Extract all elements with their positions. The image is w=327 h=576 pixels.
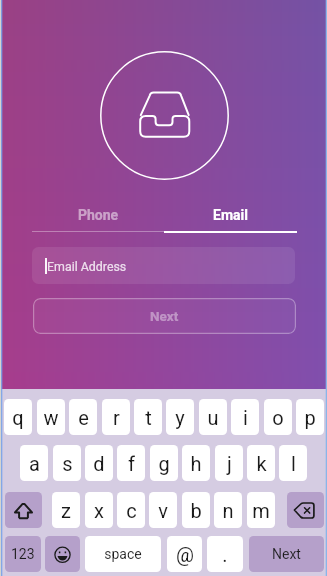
staticText: Next bbox=[150, 308, 179, 324]
button[interactable]: space bbox=[85, 536, 161, 572]
staticText: j bbox=[227, 452, 232, 475]
staticText: d bbox=[93, 452, 105, 475]
button[interactable]: Email bbox=[164, 207, 297, 233]
staticText: p bbox=[304, 406, 316, 429]
button[interactable]: r bbox=[102, 399, 130, 435]
staticText: g bbox=[158, 452, 170, 475]
button[interactable]: Next bbox=[249, 536, 324, 572]
staticText: n bbox=[222, 499, 234, 522]
button[interactable]: t bbox=[134, 399, 162, 435]
button[interactable]: w bbox=[37, 399, 65, 435]
staticText: w bbox=[43, 406, 59, 429]
staticText: Email Address bbox=[47, 259, 127, 274]
staticText: z bbox=[61, 499, 71, 522]
staticText: Phone bbox=[78, 207, 119, 223]
staticText: v bbox=[158, 499, 168, 522]
button[interactable]: g bbox=[150, 445, 178, 481]
button[interactable]: n bbox=[214, 492, 242, 528]
staticText: Email bbox=[213, 207, 248, 223]
button[interactable]: Numbers bbox=[5, 536, 41, 572]
staticText: h bbox=[190, 452, 202, 475]
staticText: q bbox=[12, 406, 24, 429]
staticText: u bbox=[207, 406, 219, 429]
staticText: space bbox=[104, 546, 142, 562]
button[interactable]: u bbox=[199, 399, 227, 435]
button[interactable]: l bbox=[279, 445, 307, 481]
staticText: x bbox=[94, 499, 104, 522]
button[interactable]: p bbox=[296, 399, 324, 435]
staticText: k bbox=[256, 452, 267, 475]
button[interactable]: s bbox=[53, 445, 81, 481]
staticText: m bbox=[252, 499, 270, 522]
staticText: i bbox=[243, 406, 248, 429]
button[interactable]: @ bbox=[167, 536, 202, 572]
staticText: 123 bbox=[11, 546, 35, 562]
staticText: b bbox=[190, 499, 202, 522]
button[interactable]: k bbox=[247, 445, 275, 481]
button[interactable]: c bbox=[117, 492, 145, 528]
staticText: a bbox=[29, 452, 40, 475]
staticText: y bbox=[175, 406, 185, 429]
button[interactable]: z bbox=[52, 492, 80, 528]
button[interactable]: Email Address bbox=[32, 247, 295, 284]
staticText: . bbox=[222, 543, 228, 566]
button[interactable]: d bbox=[85, 445, 113, 481]
staticText: t bbox=[145, 406, 152, 429]
button[interactable]: m bbox=[247, 492, 275, 528]
button[interactable]: j bbox=[215, 445, 243, 481]
button[interactable]: Backspace bbox=[287, 492, 324, 528]
staticText: f bbox=[128, 452, 135, 475]
staticText: Next bbox=[272, 546, 301, 562]
button[interactable]: Next bbox=[33, 298, 296, 334]
staticText: r bbox=[113, 406, 120, 429]
button[interactable]: q bbox=[4, 399, 32, 435]
button[interactable]: b bbox=[182, 492, 210, 528]
staticText: o bbox=[272, 406, 284, 429]
button[interactable]: h bbox=[182, 445, 210, 481]
button[interactable]: x bbox=[85, 492, 113, 528]
button[interactable]: Phone bbox=[32, 207, 164, 232]
button[interactable]: . bbox=[207, 536, 243, 572]
button[interactable]: f bbox=[117, 445, 145, 481]
button[interactable]: y bbox=[166, 399, 194, 435]
staticText: c bbox=[126, 499, 137, 522]
button[interactable]: i bbox=[231, 399, 259, 435]
button[interactable]: o bbox=[264, 399, 292, 435]
button[interactable]: v bbox=[149, 492, 177, 528]
staticText: e bbox=[78, 406, 89, 429]
staticText: @ bbox=[176, 543, 194, 566]
button[interactable]: e bbox=[69, 399, 97, 435]
button[interactable]: Emoji bbox=[45, 536, 80, 572]
staticText: l bbox=[291, 452, 296, 475]
button[interactable]: Shift bbox=[5, 492, 42, 528]
staticText: s bbox=[62, 452, 73, 475]
button[interactable]: a bbox=[20, 445, 48, 481]
